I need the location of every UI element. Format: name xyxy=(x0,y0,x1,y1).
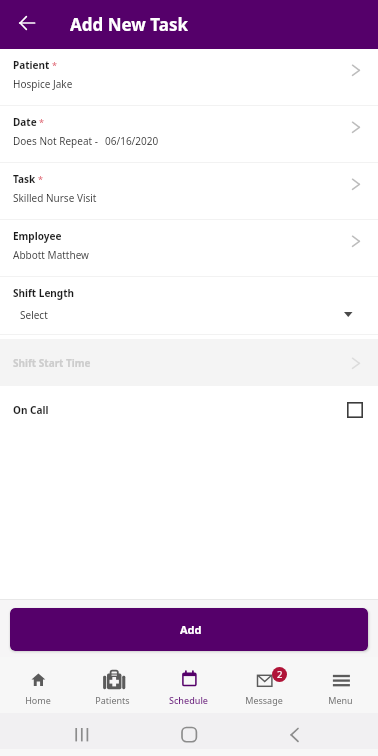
staticText: Menu xyxy=(328,694,353,706)
staticText: * xyxy=(38,173,43,185)
staticText: Hospice Jake xyxy=(13,77,73,91)
staticText: Shift Length xyxy=(13,286,75,300)
button[interactable]: Date xyxy=(0,106,378,163)
staticText: * xyxy=(39,116,44,128)
staticText: Add xyxy=(180,622,202,637)
staticText: Abbott Matthew xyxy=(13,248,89,262)
button[interactable]: Back xyxy=(275,714,315,750)
button[interactable]: Home xyxy=(169,714,209,750)
staticText: Schedule xyxy=(169,694,208,706)
staticText: 06/16/2020 xyxy=(105,134,159,148)
staticText: Shift Start Time xyxy=(13,356,91,370)
staticText: * xyxy=(52,59,57,71)
staticText: Select xyxy=(20,308,48,322)
button[interactable]: Task xyxy=(0,163,378,220)
button[interactable]: Home xyxy=(0,657,75,713)
staticText: Home xyxy=(25,694,51,706)
button[interactable]: Shift Start Time xyxy=(0,339,378,386)
staticText: Skilled Nurse Visit xyxy=(13,191,97,205)
button[interactable]: Patient xyxy=(0,49,378,106)
staticText: Task xyxy=(13,172,36,186)
staticText: 2 xyxy=(277,668,283,681)
button[interactable]: Shift Length xyxy=(0,277,378,334)
staticText: Does Not Repeat - xyxy=(13,134,98,148)
staticText: Date xyxy=(13,115,37,129)
staticText: Add New Task xyxy=(70,13,188,36)
staticText: On Call xyxy=(13,403,49,417)
button[interactable]: Recent apps xyxy=(62,714,102,750)
button[interactable]: Schedule xyxy=(150,657,226,713)
button[interactable]: 2 xyxy=(226,657,302,713)
staticText: Patient xyxy=(13,58,50,72)
button[interactable]: On Call xyxy=(0,386,378,434)
button[interactable]: Add xyxy=(10,608,368,651)
button[interactable]: Patients xyxy=(75,657,150,713)
staticText: Employee xyxy=(13,229,62,243)
button[interactable]: Employee xyxy=(0,220,378,277)
staticText: Message xyxy=(245,694,283,706)
staticText: Patients xyxy=(95,694,130,706)
button[interactable]: Back xyxy=(7,3,46,42)
button[interactable]: Menu xyxy=(302,657,378,713)
